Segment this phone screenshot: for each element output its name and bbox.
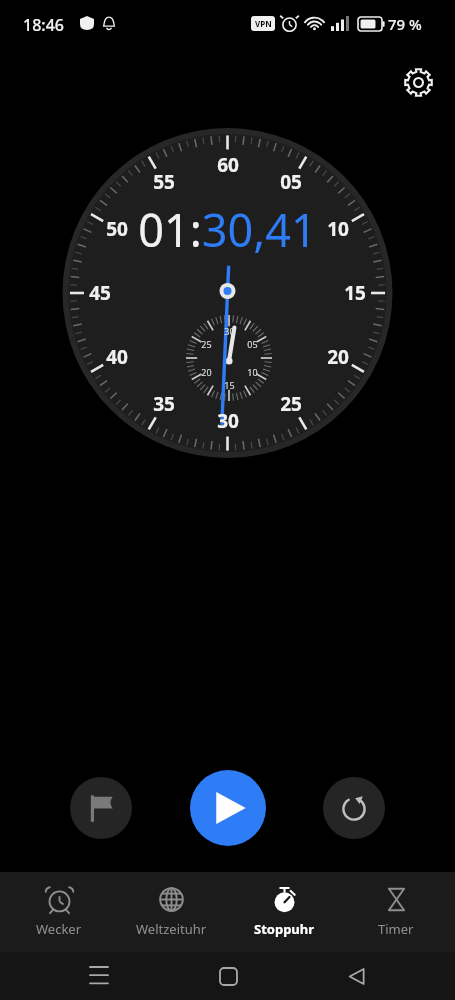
button[interactable]: Home <box>198 952 258 1000</box>
button[interactable]: Settings <box>397 61 440 104</box>
staticText: Wecker <box>36 920 82 938</box>
staticText: 15 <box>224 379 235 391</box>
staticText: VPN <box>255 18 272 29</box>
button[interactable]: Timer <box>343 872 449 952</box>
staticText: 35 <box>153 391 175 417</box>
button[interactable]: Lap <box>70 777 132 839</box>
staticText: 25 <box>201 338 212 350</box>
staticText: 15 <box>344 280 366 306</box>
staticText: 05 <box>280 169 302 195</box>
button[interactable]: Stoppuhr <box>231 872 337 952</box>
button[interactable]: Start <box>190 770 266 846</box>
staticText: 10 <box>247 366 258 378</box>
staticText: 60 <box>217 152 239 178</box>
button[interactable]: Reset <box>323 777 385 839</box>
staticText: 18:46 <box>23 14 64 36</box>
button[interactable]: Back <box>326 952 386 1000</box>
staticText: 30 <box>224 325 235 337</box>
staticText: 79 % <box>388 14 422 34</box>
staticText: Stoppuhr <box>254 920 315 938</box>
staticText: 01:30,41 <box>138 199 317 260</box>
staticText: Weltzeituhr <box>136 920 207 938</box>
staticText: 55 <box>153 169 175 195</box>
staticText: Timer <box>378 920 414 938</box>
staticText: 50 <box>106 216 128 242</box>
staticText: 45 <box>89 280 111 306</box>
staticText: 05 <box>247 338 258 350</box>
staticText: 10 <box>327 216 349 242</box>
staticText: 25 <box>280 391 302 417</box>
button[interactable]: Wecker <box>6 872 112 952</box>
button[interactable]: Recents <box>69 952 129 1000</box>
staticText: 20 <box>327 344 349 370</box>
staticText: 20 <box>201 366 212 378</box>
staticText: 30 <box>217 408 239 434</box>
staticText: 40 <box>106 344 128 370</box>
button[interactable]: Weltzeituhr <box>118 872 224 952</box>
